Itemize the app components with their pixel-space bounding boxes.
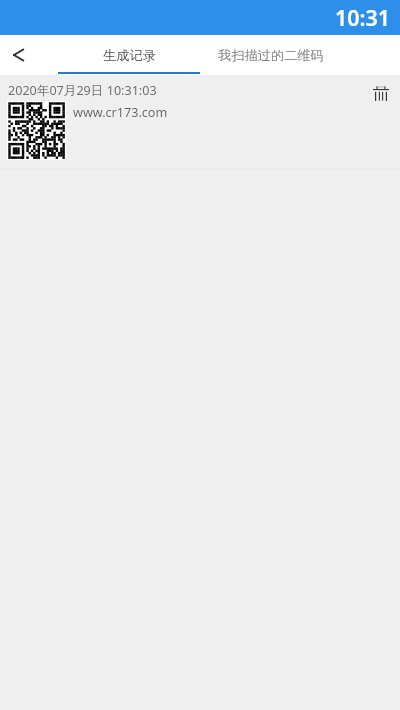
staticText: www.cr173.com: [73, 104, 168, 121]
button[interactable]: 2020年07月29日 10:31:03: [0, 75, 400, 169]
staticText: 生成记录: [103, 47, 156, 64]
staticText: 2020年07月29日 10:31:03: [8, 82, 157, 99]
button[interactable]: Delete: [364, 76, 398, 110]
button[interactable]: 生成记录: [58, 35, 200, 75]
staticText: 10:31: [335, 3, 391, 32]
button[interactable]: Back: [0, 35, 58, 75]
staticText: 我扫描过的二维码: [218, 47, 324, 64]
button[interactable]: 我扫描过的二维码: [200, 35, 341, 75]
